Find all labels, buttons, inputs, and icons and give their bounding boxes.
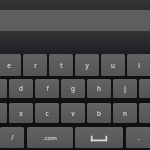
staticText: t: [60, 61, 63, 70]
staticText: u: [111, 61, 115, 70]
staticText: i: [138, 61, 140, 70]
button[interactable]: t: [49, 54, 73, 76]
staticText: v: [71, 109, 75, 118]
button[interactable]: c: [35, 103, 59, 123]
staticText: j: [124, 84, 126, 93]
button[interactable]: f: [35, 79, 59, 98]
button[interactable]: u: [101, 54, 125, 76]
button[interactable]: .com: [27, 127, 73, 148]
button[interactable]: s: [0, 79, 7, 98]
button[interactable]: i: [127, 54, 150, 76]
staticText: g: [71, 84, 75, 93]
button[interactable]: b: [87, 103, 111, 123]
button[interactable]: /: [0, 127, 24, 148]
staticText: x: [19, 109, 23, 118]
button[interactable]: n: [113, 103, 137, 123]
staticText: d: [19, 84, 23, 93]
button[interactable]: e: [0, 54, 21, 76]
staticText: /: [11, 133, 14, 142]
button[interactable]: x: [9, 103, 33, 123]
button[interactable]: h: [87, 79, 111, 98]
button[interactable]: .: [126, 127, 150, 148]
staticText: r: [34, 61, 37, 70]
button[interactable]: z: [0, 103, 7, 123]
staticText: n: [123, 109, 127, 118]
button[interactable]: k: [139, 79, 150, 98]
staticText: h: [97, 84, 101, 93]
button[interactable]: m: [139, 103, 150, 123]
staticText: e: [7, 61, 11, 70]
staticText: .com: [43, 134, 57, 142]
button[interactable]: g: [61, 79, 85, 98]
button[interactable]: Space: [75, 127, 123, 148]
staticText: .: [138, 133, 140, 142]
button[interactable]: v: [61, 103, 85, 123]
staticText: b: [97, 109, 101, 118]
staticText: f: [46, 84, 49, 93]
button[interactable]: y: [75, 54, 99, 76]
button[interactable]: r: [23, 54, 47, 76]
button[interactable]: d: [9, 79, 33, 98]
staticText: c: [45, 109, 49, 118]
staticText: y: [85, 61, 89, 70]
button[interactable]: j: [113, 79, 137, 98]
